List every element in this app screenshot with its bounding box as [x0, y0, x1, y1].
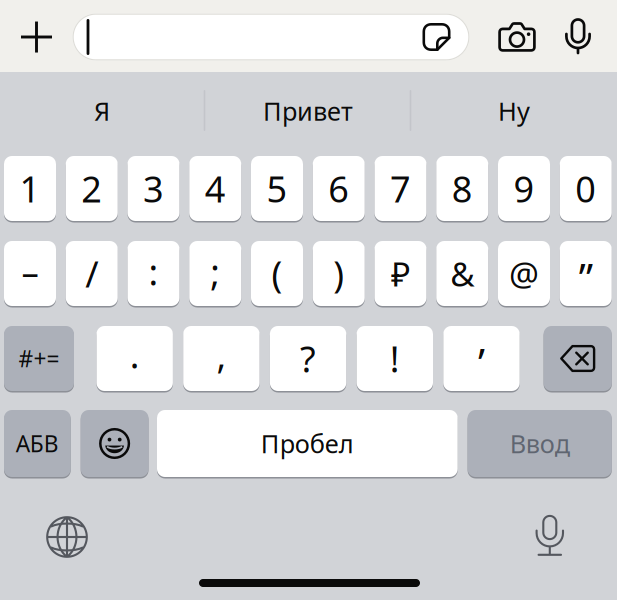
staticText: Привет: [263, 94, 353, 128]
staticText: ₽: [391, 251, 410, 296]
button[interactable]: ”: [560, 241, 612, 306]
button[interactable]: /: [66, 241, 118, 306]
button[interactable]: ’: [443, 326, 520, 391]
staticText: ;: [210, 248, 220, 295]
button[interactable]: ?: [270, 326, 346, 391]
button[interactable]: @: [498, 241, 550, 306]
button[interactable]: Add attachment: [3, 5, 69, 69]
staticText: /: [85, 250, 98, 297]
button[interactable]: Привет: [205, 72, 410, 144]
staticText: .: [130, 331, 140, 378]
button[interactable]: 5: [251, 156, 303, 221]
button[interactable]: #+=: [4, 326, 74, 391]
button[interactable]: Dictate: [519, 507, 581, 565]
button[interactable]: &: [436, 241, 488, 306]
staticText: 1: [19, 165, 40, 212]
button[interactable]: Emoji: [81, 410, 148, 477]
staticText: (: [271, 250, 282, 297]
staticText: :: [148, 248, 158, 295]
staticText: Ввод: [510, 427, 570, 460]
button[interactable]: 6: [313, 156, 365, 221]
button[interactable]: 7: [374, 156, 426, 221]
button[interactable]: Delete: [544, 326, 612, 391]
button[interactable]: 3: [127, 156, 179, 221]
button[interactable]: !: [357, 326, 433, 391]
button[interactable]: Ну: [411, 72, 616, 144]
button[interactable]: 0: [560, 156, 612, 221]
staticText: 9: [513, 165, 534, 212]
button[interactable]: ;: [189, 241, 241, 306]
staticText: @: [509, 251, 539, 296]
button[interactable]: 1: [4, 156, 56, 221]
staticText: 0: [575, 165, 596, 212]
staticText: –: [21, 248, 38, 294]
button[interactable]: ₽: [374, 241, 426, 306]
button[interactable]: ): [313, 241, 365, 306]
button[interactable]: Я: [0, 72, 204, 144]
button[interactable]: 4: [189, 156, 241, 221]
staticText: #+=: [18, 343, 59, 373]
staticText: 7: [390, 165, 411, 212]
button[interactable]: .: [96, 326, 173, 391]
staticText: ”: [579, 251, 593, 304]
staticText: ): [333, 250, 344, 297]
staticText: 8: [452, 165, 473, 212]
staticText: &: [450, 251, 474, 296]
staticText: 2: [81, 165, 102, 212]
button[interactable]: :: [127, 241, 179, 306]
button[interactable]: 9: [498, 156, 550, 221]
button[interactable]: ,: [183, 326, 260, 391]
button[interactable]: Camera: [487, 7, 547, 67]
button[interactable]: 2: [66, 156, 118, 221]
button[interactable]: –: [4, 241, 56, 306]
button[interactable]: Voice message: [551, 6, 605, 66]
staticText: 6: [328, 165, 349, 212]
staticText: 4: [205, 165, 226, 212]
staticText: АБВ: [16, 428, 59, 458]
button[interactable]: (: [251, 241, 303, 306]
staticText: ,: [216, 331, 226, 378]
button[interactable]: АБВ: [4, 410, 71, 477]
button[interactable]: 8: [436, 156, 488, 221]
staticText: Ну: [498, 94, 530, 128]
button[interactable]: Stickers: [412, 13, 460, 61]
staticText: Пробел: [261, 427, 354, 460]
staticText: Я: [94, 94, 110, 128]
staticText: !: [390, 335, 400, 382]
staticText: 5: [266, 165, 287, 212]
staticText: ?: [300, 335, 316, 382]
button[interactable]: Ввод: [468, 410, 612, 477]
staticText: ’: [478, 336, 485, 389]
button[interactable]: Пробел: [157, 410, 458, 477]
button[interactable]: Next keyboard: [33, 508, 101, 566]
staticText: 3: [143, 165, 164, 212]
